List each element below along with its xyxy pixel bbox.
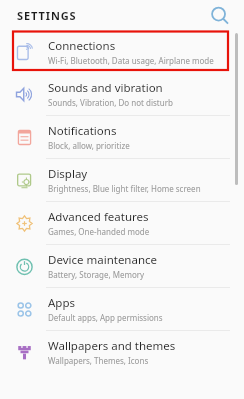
button[interactable]: Search: [208, 4, 232, 28]
staticText: Advanced features: [48, 209, 149, 225]
button[interactable]: Device maintenance: [0, 245, 244, 287]
staticText: Device maintenance: [48, 252, 158, 268]
staticText: Sounds, Vibration, Do not disturb: [48, 97, 173, 108]
button[interactable]: Notifications: [0, 116, 244, 158]
button[interactable]: Display: [0, 159, 244, 201]
staticText: Connections: [48, 38, 116, 54]
staticText: Wallpapers and themes: [48, 338, 176, 354]
button[interactable]: Connections: [0, 31, 244, 73]
button[interactable]: Advanced features: [0, 202, 244, 244]
button[interactable]: Sounds and vibration: [0, 73, 244, 115]
staticText: Display: [48, 166, 88, 182]
staticText: Games, One-handed mode: [48, 226, 150, 237]
staticText: Sounds and vibration: [48, 80, 163, 96]
staticText: Block, allow, prioritize: [48, 140, 130, 151]
staticText: Default apps, App permissions: [48, 312, 163, 323]
staticText: Battery, Storage, Memory: [48, 269, 145, 280]
button[interactable]: Wallpapers and themes: [0, 331, 244, 373]
button[interactable]: Apps: [0, 288, 244, 330]
staticText: Brightness, Blue light filter, Home scre…: [48, 183, 201, 194]
staticText: Notifications: [48, 123, 117, 139]
staticText: Apps: [48, 295, 76, 311]
staticText: Wallpapers, Themes, Icons: [48, 355, 149, 366]
staticText: Wi-Fi, Bluetooth, Data usage, Airplane m…: [48, 55, 214, 66]
staticText: SETTINGS: [17, 8, 77, 23]
